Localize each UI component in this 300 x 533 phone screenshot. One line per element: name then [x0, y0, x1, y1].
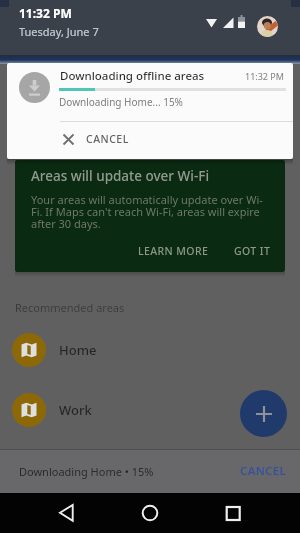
staticText: LEARN MORE [138, 244, 209, 258]
staticText: CANCEL [240, 463, 287, 479]
staticText: CANCEL [86, 132, 129, 146]
button[interactable] [134, 497, 166, 529]
button[interactable] [240, 390, 287, 437]
staticText: Downloading Home... 15% [59, 95, 183, 109]
staticText: 11:32 PM [245, 70, 284, 82]
staticText: Areas will update over Wi-Fi [31, 167, 210, 185]
staticText: 11:32 PM [19, 5, 72, 21]
button[interactable]: LEARN MORE [123, 239, 223, 263]
staticText: Work [59, 401, 92, 419]
staticText: Home [59, 341, 97, 359]
staticText: Your areas will automatically update ove… [31, 192, 263, 231]
button[interactable]: CANCEL [231, 454, 295, 488]
button[interactable]: Downloading offline areas [7, 63, 293, 159]
staticText: Downloading offline areas [60, 68, 205, 84]
staticText: Recommended areas [15, 300, 125, 315]
staticText: Downloading Home • 15% [19, 464, 154, 479]
button[interactable]: Work [0, 380, 300, 440]
button[interactable] [217, 497, 249, 529]
staticText: Tuesday, June 7 [19, 24, 99, 39]
button[interactable]: Home [0, 320, 300, 380]
button[interactable] [52, 497, 84, 529]
staticText: GOT IT [234, 244, 271, 258]
button[interactable]: CANCEL [63, 123, 183, 155]
button[interactable]: GOT IT [220, 239, 285, 263]
